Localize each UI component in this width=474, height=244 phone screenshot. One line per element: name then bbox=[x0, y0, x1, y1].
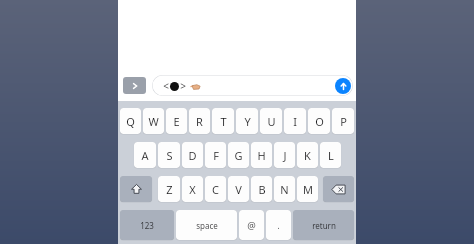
staticText: 123 bbox=[140, 220, 154, 231]
button[interactable]: M bbox=[297, 176, 318, 202]
staticText: Z bbox=[166, 182, 173, 197]
button[interactable]: Backspace bbox=[323, 176, 354, 202]
button[interactable]: Y bbox=[236, 108, 258, 134]
button[interactable]: . bbox=[266, 210, 291, 240]
button[interactable]: Q bbox=[120, 108, 141, 134]
staticText: X bbox=[189, 182, 196, 197]
button[interactable]: U bbox=[260, 108, 282, 134]
staticText: Q bbox=[126, 114, 135, 129]
staticText: K bbox=[304, 148, 311, 163]
staticText: I bbox=[293, 114, 297, 129]
staticText: T bbox=[220, 114, 227, 129]
button[interactable]: P bbox=[332, 108, 354, 134]
staticText: return bbox=[312, 220, 336, 231]
button[interactable]: O bbox=[308, 108, 330, 134]
staticText: N bbox=[280, 182, 289, 197]
staticText: P bbox=[340, 114, 347, 129]
button[interactable]: T bbox=[212, 108, 234, 134]
staticText: > bbox=[180, 79, 186, 93]
button[interactable]: Expand apps bbox=[123, 77, 146, 94]
button[interactable]: W bbox=[143, 108, 164, 134]
button[interactable]: V bbox=[228, 176, 249, 202]
staticText: C bbox=[212, 182, 219, 197]
button[interactable]: space bbox=[176, 210, 237, 240]
staticText: D bbox=[188, 148, 197, 163]
staticText: U bbox=[267, 114, 276, 129]
button[interactable]: Shift bbox=[120, 176, 152, 202]
staticText: E bbox=[173, 114, 180, 129]
button[interactable]: G bbox=[228, 142, 249, 168]
button[interactable]: < bbox=[152, 75, 353, 96]
staticText: < bbox=[163, 79, 169, 93]
staticText: R bbox=[196, 114, 203, 129]
staticText: . bbox=[277, 220, 280, 231]
button[interactable]: A bbox=[134, 142, 156, 168]
button[interactable]: L bbox=[320, 142, 341, 168]
staticText: J bbox=[283, 148, 287, 163]
button[interactable]: return bbox=[293, 210, 354, 240]
staticText: Y bbox=[244, 114, 251, 129]
button[interactable]: D bbox=[182, 142, 203, 168]
button[interactable]: B bbox=[251, 176, 272, 202]
staticText: S bbox=[166, 148, 173, 163]
button[interactable]: I bbox=[284, 108, 306, 134]
button[interactable]: 123 bbox=[120, 210, 174, 240]
staticText: G bbox=[234, 148, 243, 163]
button[interactable]: Z bbox=[158, 176, 180, 202]
staticText: B bbox=[258, 182, 266, 197]
staticText: W bbox=[148, 114, 159, 129]
staticText: A bbox=[141, 148, 149, 163]
staticText: @ bbox=[247, 219, 256, 232]
button[interactable]: H bbox=[251, 142, 272, 168]
button[interactable]: C bbox=[205, 176, 226, 202]
button[interactable]: @ bbox=[239, 210, 264, 240]
button[interactable]: S bbox=[158, 142, 180, 168]
button[interactable]: E bbox=[166, 108, 187, 134]
staticText: space bbox=[196, 220, 218, 231]
staticText: F bbox=[213, 148, 219, 163]
button[interactable]: F bbox=[205, 142, 226, 168]
button[interactable]: Send bbox=[335, 78, 351, 94]
button[interactable]: K bbox=[297, 142, 318, 168]
button[interactable]: J bbox=[274, 142, 295, 168]
staticText: V bbox=[235, 182, 242, 197]
button[interactable]: R bbox=[189, 108, 210, 134]
staticText: M bbox=[303, 182, 313, 197]
button[interactable]: N bbox=[274, 176, 295, 202]
staticText: O bbox=[315, 114, 324, 129]
staticText: L bbox=[328, 148, 334, 163]
staticText: H bbox=[257, 148, 266, 163]
button[interactable]: X bbox=[182, 176, 203, 202]
